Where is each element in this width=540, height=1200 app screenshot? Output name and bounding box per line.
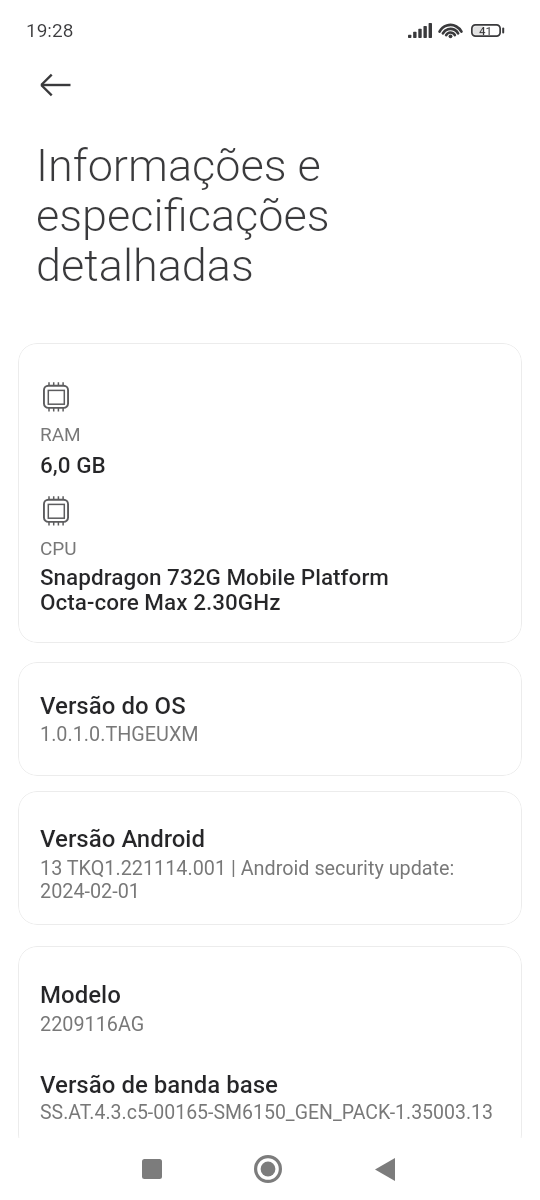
button[interactable]: Home (240, 1141, 296, 1197)
button[interactable]: Recent apps (124, 1141, 180, 1197)
staticText: 41 (479, 25, 493, 37)
button[interactable]: Modelo (18, 946, 522, 1154)
button[interactable]: RAM (18, 343, 522, 643)
staticText: 1.0.1.0.THGEUXM (40, 723, 199, 746)
staticText: Versão de banda base (40, 1071, 278, 1099)
staticText: Informações e especificações detalhadas (36, 142, 330, 292)
staticText: 19:28 (26, 20, 74, 42)
button[interactable]: Back (40, 58, 94, 112)
button[interactable]: Versão do OS (18, 662, 522, 776)
staticText: SS.AT.4.3.c5-00165-SM6150_GEN_PACK-1.350… (40, 1101, 494, 1124)
staticText: Snapdragon 732G Mobile Platform Octa-cor… (40, 565, 389, 615)
button[interactable]: Versão Android (18, 791, 522, 925)
staticText: Modelo (40, 981, 121, 1009)
staticText: RAM (40, 424, 81, 446)
staticText: Versão do OS (40, 692, 186, 720)
staticText: 2209116AG (40, 1013, 145, 1036)
staticText: 6,0 GB (40, 453, 106, 478)
staticText: CPU (40, 538, 77, 560)
button[interactable]: Back (357, 1141, 413, 1197)
staticText: 13 TKQ1.221114.001 | Android security up… (40, 857, 455, 903)
staticText: Versão Android (40, 825, 206, 853)
